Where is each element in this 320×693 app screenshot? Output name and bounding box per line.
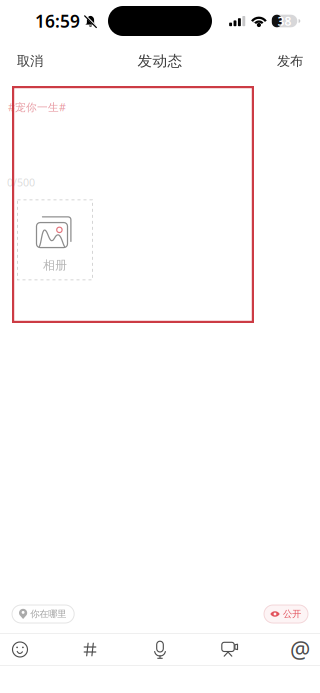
button[interactable]: 相册 [17, 199, 93, 280]
staticText: @ [290, 634, 310, 664]
staticText: 你在哪里 [30, 608, 66, 620]
staticText: 发动态 [137, 52, 182, 70]
button[interactable]: 提及 [280, 634, 320, 665]
staticText: 公开 [283, 608, 301, 620]
staticText: 0/500 [7, 175, 35, 189]
button[interactable]: 视频 [210, 634, 250, 665]
staticText: 取消 [17, 53, 43, 69]
button[interactable]: 语音 [140, 634, 180, 665]
staticText: 相册 [43, 258, 67, 273]
button[interactable]: 取消 [0, 42, 60, 80]
staticText: #宠你一生# [8, 100, 66, 114]
staticText: 38 [277, 13, 291, 29]
button[interactable]: 表情 [0, 634, 40, 665]
staticText: 发布 [277, 53, 303, 69]
button[interactable]: 你在哪里 [12, 605, 74, 623]
button[interactable]: 话题 [70, 634, 110, 665]
button[interactable]: 公开 [264, 605, 308, 623]
button[interactable]: 发布 [260, 42, 320, 80]
staticText: 16:59 [35, 9, 80, 32]
